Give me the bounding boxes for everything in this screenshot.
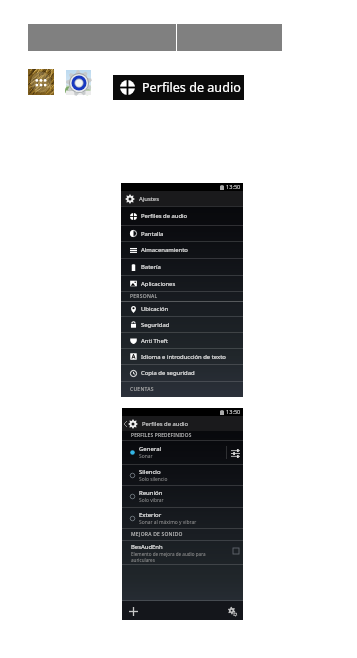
staticText: Batería (141, 263, 161, 271)
staticText: BesAudEnh (131, 543, 163, 551)
staticText: Exterior (139, 511, 162, 519)
staticText: Aplicaciones (141, 280, 176, 288)
staticText: MEJORA DE SONIDO (131, 531, 183, 538)
button[interactable]: Anti Theft (121, 332, 243, 348)
button[interactable]: Copia de seguridad (121, 364, 243, 381)
button[interactable]: Almacenamiento (121, 241, 243, 258)
button[interactable]: Silencio (122, 465, 243, 485)
staticText: Silencio (139, 468, 161, 476)
staticText: Perfiles de audio (141, 212, 188, 220)
staticText: Perfiles de audio (142, 420, 189, 428)
staticText: Anti Theft (141, 337, 168, 345)
button[interactable]: Seguridad (121, 316, 243, 332)
button[interactable]: All apps (28, 69, 54, 95)
button[interactable]: Idioma e introducción de texto (121, 348, 243, 364)
staticText: Copia de seguridad (141, 369, 195, 377)
staticText: PERFILES PREDEFINIDOS (131, 432, 192, 439)
button[interactable]: Exterior (122, 508, 243, 528)
button[interactable]: BesAudEnh (122, 541, 243, 564)
button[interactable]: Add profile (126, 604, 140, 618)
other: Back (124, 421, 127, 427)
staticText: General (139, 445, 162, 453)
staticText: Seguridad (141, 321, 170, 329)
button[interactable]: Pantalla (121, 225, 243, 241)
button[interactable]: Equalizer (227, 445, 243, 461)
staticText: PERSONAL (130, 293, 158, 300)
staticText: Sonar (139, 453, 153, 460)
staticText: Solo silencio (139, 476, 168, 483)
staticText: Almacenamiento (141, 246, 188, 254)
button[interactable]: Aplicaciones (121, 275, 243, 291)
button[interactable]: Reunión (122, 486, 243, 507)
staticText: Elemento de mejora de audio para auricul… (131, 551, 211, 563)
staticText: Sonar al máximo y vibrar (139, 519, 197, 526)
staticText: CUENTAS (130, 386, 154, 393)
button[interactable]: Settings (66, 70, 91, 95)
button[interactable]: Perfiles de audio (113, 75, 244, 100)
button[interactable]: Back (122, 416, 243, 431)
button[interactable]: Ubicación (121, 302, 243, 316)
button[interactable]: Perfiles de audio (121, 206, 243, 225)
button[interactable]: Ajustes (121, 191, 243, 206)
button[interactable]: Settings (225, 604, 239, 618)
staticText: Ubicación (141, 305, 169, 313)
button[interactable]: General (122, 441, 243, 464)
staticText: 13:50 (226, 408, 241, 416)
staticText: Perfiles de audio (142, 79, 241, 96)
staticText: Ajustes (139, 195, 160, 203)
button[interactable]: Batería (121, 258, 243, 275)
staticText: 13:50 (226, 183, 241, 191)
staticText: Idioma e introducción de texto (141, 353, 226, 361)
staticText: Reunión (139, 489, 163, 497)
staticText: Pantalla (141, 230, 164, 238)
staticText: Solo vibrar (139, 497, 164, 504)
